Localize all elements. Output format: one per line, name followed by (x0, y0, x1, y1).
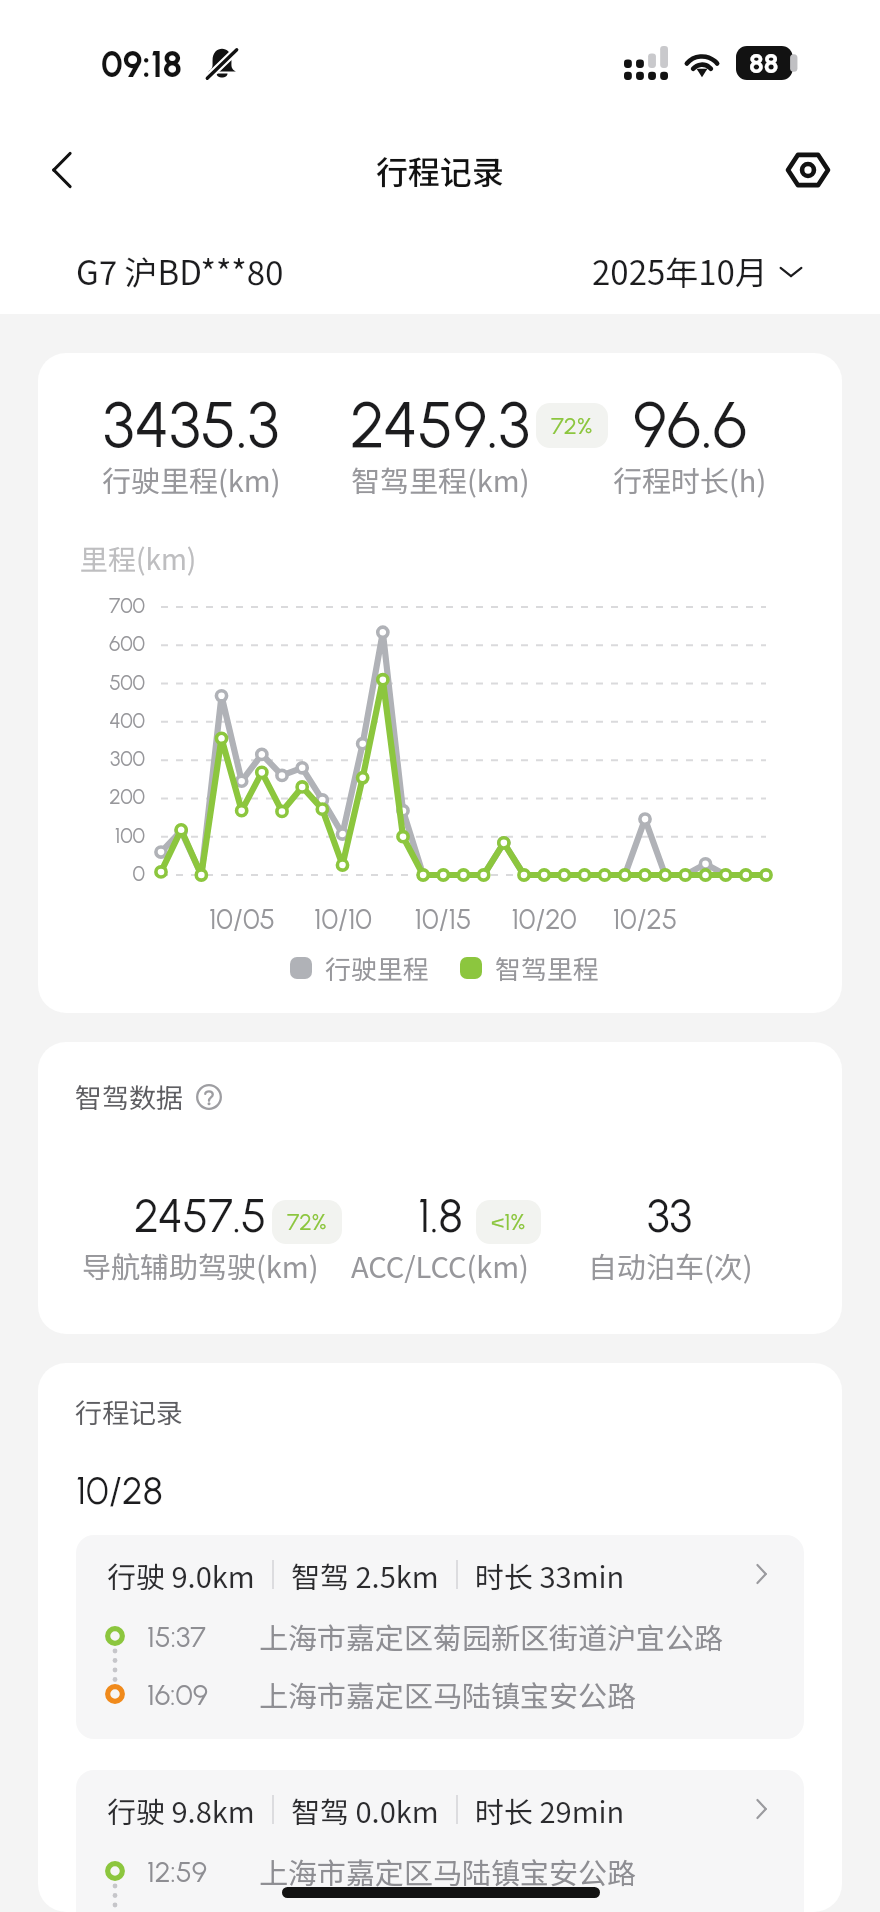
staticText: 09:18 (101, 43, 183, 86)
staticText: 96.6 (633, 386, 748, 463)
staticText: 智驾里程(km) (351, 458, 530, 500)
staticText: 72% (287, 1208, 327, 1236)
staticText: 时长 33min (475, 1554, 625, 1594)
button[interactable]: Settings (775, 137, 841, 203)
staticText: 72% (551, 411, 593, 440)
staticText: 行驶里程 (325, 949, 430, 987)
staticText: 行驶 9.0km (107, 1554, 255, 1594)
staticText: 导航辅助驾驶(km) (82, 1244, 319, 1286)
staticText: 行程记录 (376, 147, 505, 193)
staticText: 15:37 (147, 1619, 206, 1654)
staticText: 600 (40, 631, 145, 656)
staticText: 行驶里程(km) (102, 458, 281, 500)
staticText: 行程时长(h) (613, 458, 767, 500)
staticText: 33 (647, 1188, 693, 1243)
staticText: 100 (40, 823, 145, 848)
staticText: 700 (40, 593, 145, 618)
staticText: 200 (40, 784, 145, 809)
staticText: 0 (40, 861, 145, 886)
staticText: 10/28 (76, 1468, 163, 1514)
staticText: G7 沪BD***80 (76, 247, 284, 295)
staticText: 上海市嘉定区菊园新区街道沪宜公路 (259, 1615, 724, 1657)
staticText: 2457.5 (134, 1188, 267, 1243)
staticText: 智驾里程 (495, 949, 600, 987)
staticText: 10/25 (590, 902, 700, 936)
staticText: ACC/LCC(km) (351, 1244, 529, 1286)
staticText: 10/15 (388, 902, 498, 936)
staticText: 2459.3 (350, 386, 530, 463)
staticText: 500 (40, 670, 145, 695)
staticText: 1.8 (418, 1188, 463, 1243)
button[interactable]: Back (30, 137, 96, 203)
button[interactable]: 行驶 9.8km (76, 1770, 804, 1912)
staticText: 10/05 (187, 902, 297, 936)
staticText: 300 (40, 746, 145, 771)
staticText: 上海市嘉定区马陆镇宝安公路 (259, 1850, 637, 1892)
staticText: 时长 29min (475, 1789, 625, 1829)
button[interactable]: 行驶 9.0km (76, 1535, 804, 1739)
staticText: 400 (40, 708, 145, 733)
staticText: 上海市嘉定区马陆镇宝安公路 (259, 1673, 637, 1715)
staticText: <1% (491, 1208, 526, 1236)
staticText: 自动泊车(次) (588, 1244, 753, 1286)
staticText: 行程记录 (75, 1392, 183, 1431)
staticText: 智驾 2.5km (291, 1554, 439, 1594)
staticText: 16:09 (147, 1677, 209, 1712)
staticText: 行驶 9.8km (107, 1789, 255, 1829)
staticText: 智驾 0.0km (291, 1789, 439, 1829)
staticText: 里程(km) (80, 538, 197, 579)
staticText: 88 (749, 47, 779, 79)
staticText: 3435.3 (103, 386, 280, 463)
staticText: 12:59 (147, 1854, 208, 1889)
button[interactable]: Info (193, 1081, 225, 1113)
staticText: 2025年10月 (592, 247, 768, 295)
button[interactable]: 2025年10月 (592, 239, 804, 303)
staticText: 智驾数据 (75, 1077, 183, 1116)
staticText: 10/20 (489, 902, 599, 936)
staticText: 10/10 (288, 902, 398, 936)
